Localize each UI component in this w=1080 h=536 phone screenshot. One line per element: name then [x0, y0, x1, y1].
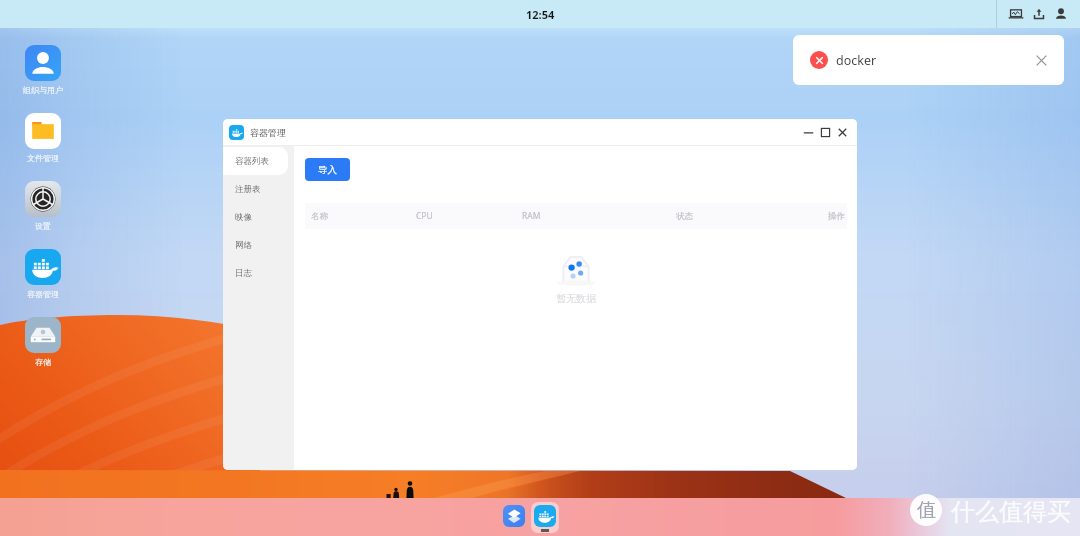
button[interactable]: 网络: [223, 231, 288, 259]
staticText: 名称: [311, 211, 416, 222]
staticText: 容器列表: [235, 156, 269, 167]
button[interactable]: 注册表: [223, 175, 288, 203]
button[interactable]: 存储: [9, 317, 77, 367]
button[interactable]: 日志: [223, 259, 288, 287]
staticText: docker: [836, 52, 877, 69]
staticText: 存储: [35, 357, 51, 367]
staticText: 导入: [318, 164, 337, 176]
staticText: 网络: [235, 240, 252, 251]
staticText: 什么值得买: [951, 497, 1071, 527]
button[interactable]: 容器列表: [223, 147, 288, 175]
staticText: 容器管理: [27, 289, 59, 299]
button[interactable]: 组织与用户: [9, 45, 77, 95]
staticText: 12:54: [526, 7, 555, 22]
staticText: CPU: [416, 210, 522, 222]
staticText: 暂无数据: [556, 292, 596, 305]
button[interactable]: 设置: [9, 181, 77, 231]
button[interactable]: Maximize: [817, 124, 834, 141]
button[interactable]: Resource monitor: [1008, 6, 1024, 22]
button[interactable]: 映像: [223, 203, 288, 231]
staticText: 状态: [676, 211, 828, 222]
button[interactable]: 文件管理: [9, 113, 77, 163]
staticText: 操作: [828, 211, 845, 222]
staticText: 值: [917, 498, 936, 522]
button[interactable]: 导入: [305, 158, 350, 181]
staticText: 容器管理: [250, 127, 286, 138]
button[interactable]: Close notification: [1034, 53, 1049, 68]
staticText: RAM: [522, 210, 676, 222]
staticText: 映像: [235, 212, 252, 223]
button[interactable]: All apps: [503, 505, 525, 527]
button[interactable]: Close: [834, 124, 851, 141]
staticText: 文件管理: [27, 153, 59, 163]
button[interactable]: 容器管理: [9, 249, 77, 299]
button[interactable]: Upload: [1032, 7, 1046, 21]
button[interactable]: Minimize: [800, 124, 817, 141]
staticText: 组织与用户: [23, 85, 63, 95]
button[interactable]: Container manager: [531, 502, 559, 533]
button[interactable]: Account: [1054, 7, 1068, 21]
staticText: 日志: [235, 268, 252, 279]
staticText: 注册表: [235, 184, 261, 195]
staticText: 设置: [35, 221, 51, 231]
